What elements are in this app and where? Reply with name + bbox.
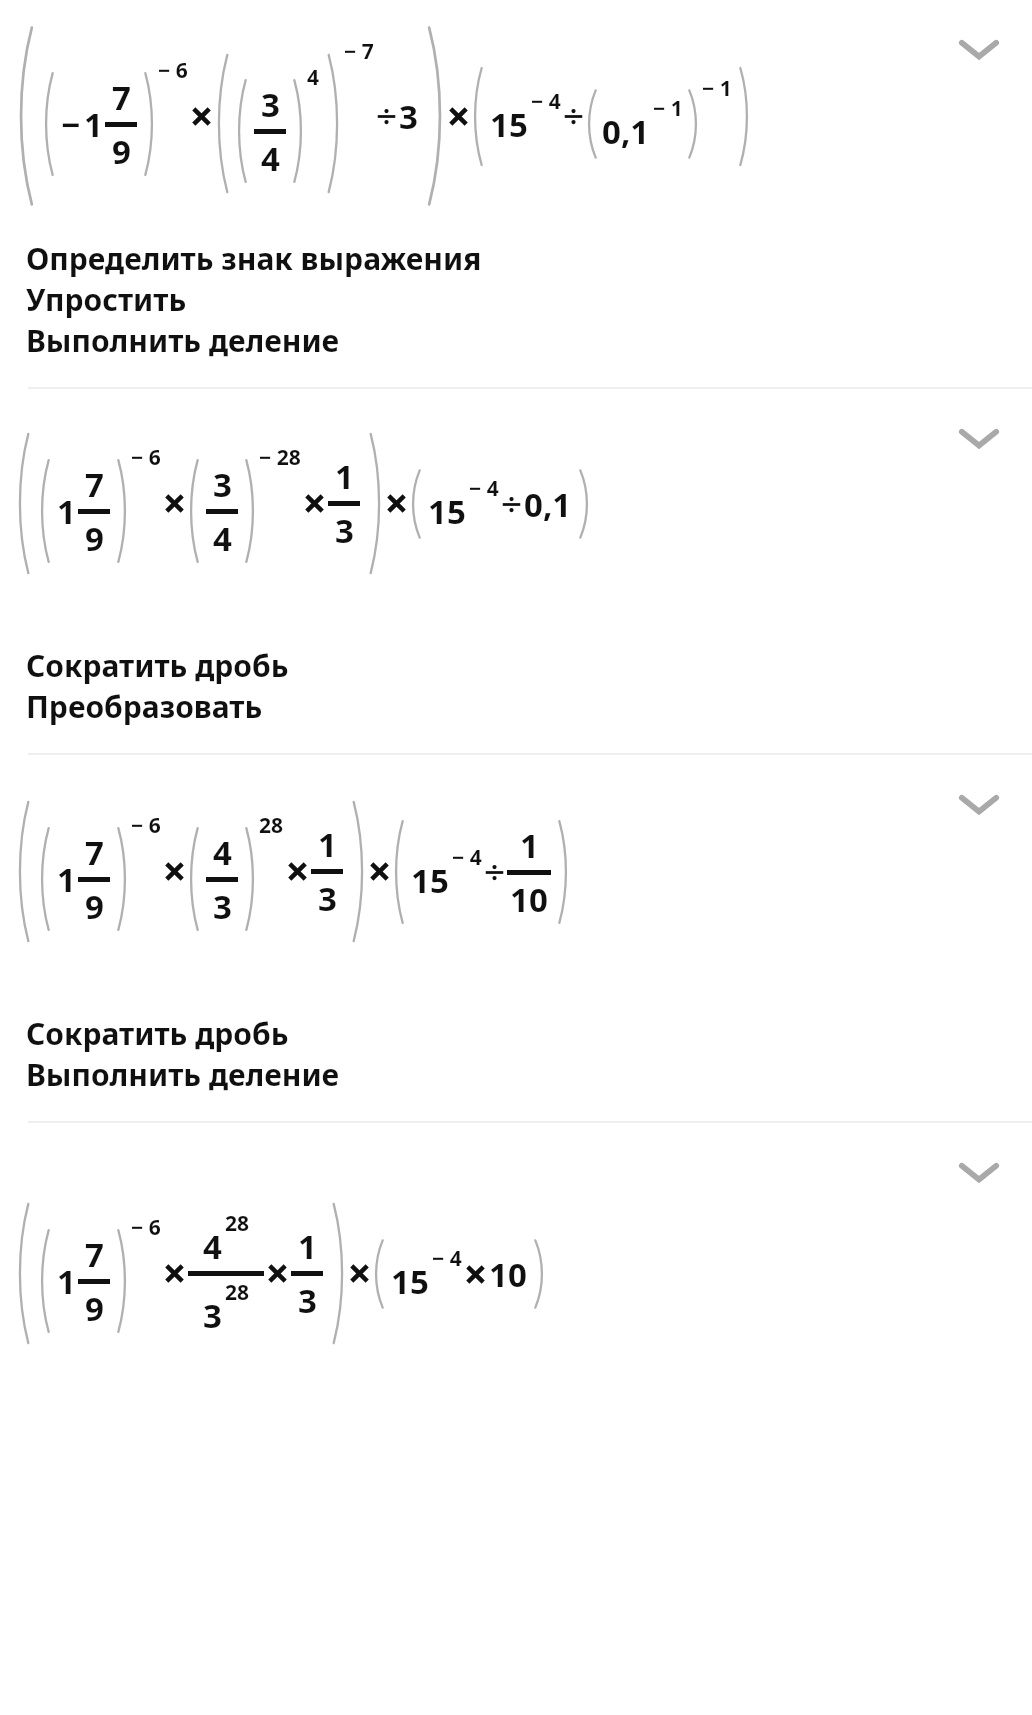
staticText: 4	[261, 136, 280, 181]
staticText: 1	[298, 1224, 317, 1269]
staticText: Выполнить деление	[26, 1054, 340, 1095]
button[interactable]: Сократить дробь	[26, 645, 1032, 686]
staticText: 1	[84, 102, 103, 147]
staticText: Сократить дробь	[26, 1013, 289, 1054]
staticText: 9	[85, 516, 104, 561]
staticText: 3	[318, 876, 337, 921]
staticText: 7	[85, 1232, 104, 1277]
staticText: 28	[225, 1278, 250, 1307]
staticText: 7	[85, 830, 104, 875]
staticText: 3	[335, 508, 354, 553]
staticText: − 6	[131, 811, 161, 840]
staticText: 4	[203, 1224, 222, 1269]
button[interactable]: −	[0, 0, 1032, 232]
staticText: Упростить	[26, 279, 187, 320]
staticText: 1	[57, 489, 76, 534]
staticText: 9	[112, 129, 131, 174]
button[interactable]: Expand step	[944, 1137, 1014, 1207]
staticText: 10	[510, 877, 548, 922]
button[interactable]: Expand step	[944, 403, 1014, 473]
staticText: 3	[298, 1278, 317, 1323]
staticText: − 4	[469, 474, 499, 503]
staticText: 9	[85, 1286, 104, 1331]
staticText: 0,1	[602, 109, 650, 154]
staticText: 3	[261, 82, 280, 127]
staticText: Определить знак выражения	[26, 238, 482, 279]
staticText: 1	[335, 454, 354, 499]
button[interactable]: Expand step	[944, 14, 1014, 84]
staticText: − 6	[158, 56, 188, 85]
staticText: 1	[318, 822, 337, 867]
staticText: − 1	[702, 74, 732, 103]
button[interactable]: Сократить дробь	[26, 1013, 1032, 1054]
staticText: − 28	[259, 443, 301, 472]
staticText: 15	[411, 858, 449, 903]
staticText: 1	[520, 823, 539, 868]
staticText: 10	[489, 1252, 527, 1297]
staticText: 28	[259, 811, 284, 840]
staticText: 15	[391, 1259, 429, 1304]
staticText: 4	[307, 63, 320, 92]
staticText: 9	[85, 884, 104, 929]
staticText: 3	[399, 94, 418, 139]
staticText: 7	[85, 462, 104, 507]
button[interactable]: Expand step	[944, 769, 1014, 839]
staticText: 3	[203, 1293, 222, 1338]
staticText: −	[61, 102, 81, 147]
staticText: 7	[112, 75, 131, 120]
staticText: 1	[57, 857, 76, 902]
staticText: 0,1	[524, 482, 572, 527]
staticText: − 4	[531, 87, 561, 116]
staticText: 15	[428, 489, 466, 534]
staticText: − 4	[452, 843, 482, 872]
button[interactable]: 1	[0, 389, 1032, 617]
button[interactable]: Выполнить деление	[26, 1054, 1032, 1095]
staticText: 3	[213, 884, 232, 929]
staticText: − 6	[131, 1213, 161, 1242]
button[interactable]: Упростить	[26, 279, 1032, 320]
staticText: 28	[225, 1209, 250, 1238]
staticText: 1	[57, 1259, 76, 1304]
staticText: Выполнить деление	[26, 320, 340, 361]
staticText: 4	[213, 830, 232, 875]
button[interactable]: 1	[0, 1123, 1032, 1423]
button[interactable]: 1	[0, 755, 1032, 987]
staticText: − 6	[131, 443, 161, 472]
staticText: − 4	[432, 1244, 462, 1273]
staticText: 4	[213, 516, 232, 561]
button[interactable]: Преобразовать	[26, 686, 1032, 727]
button[interactable]: Выполнить деление	[26, 320, 1032, 361]
button[interactable]: Определить знак выражения	[26, 238, 1032, 279]
staticText: − 1	[653, 94, 683, 123]
staticText: 15	[490, 102, 528, 147]
staticText: Сократить дробь	[26, 645, 289, 686]
staticText: Преобразовать	[26, 686, 263, 727]
staticText: − 7	[344, 37, 374, 66]
staticText: 3	[213, 462, 232, 507]
